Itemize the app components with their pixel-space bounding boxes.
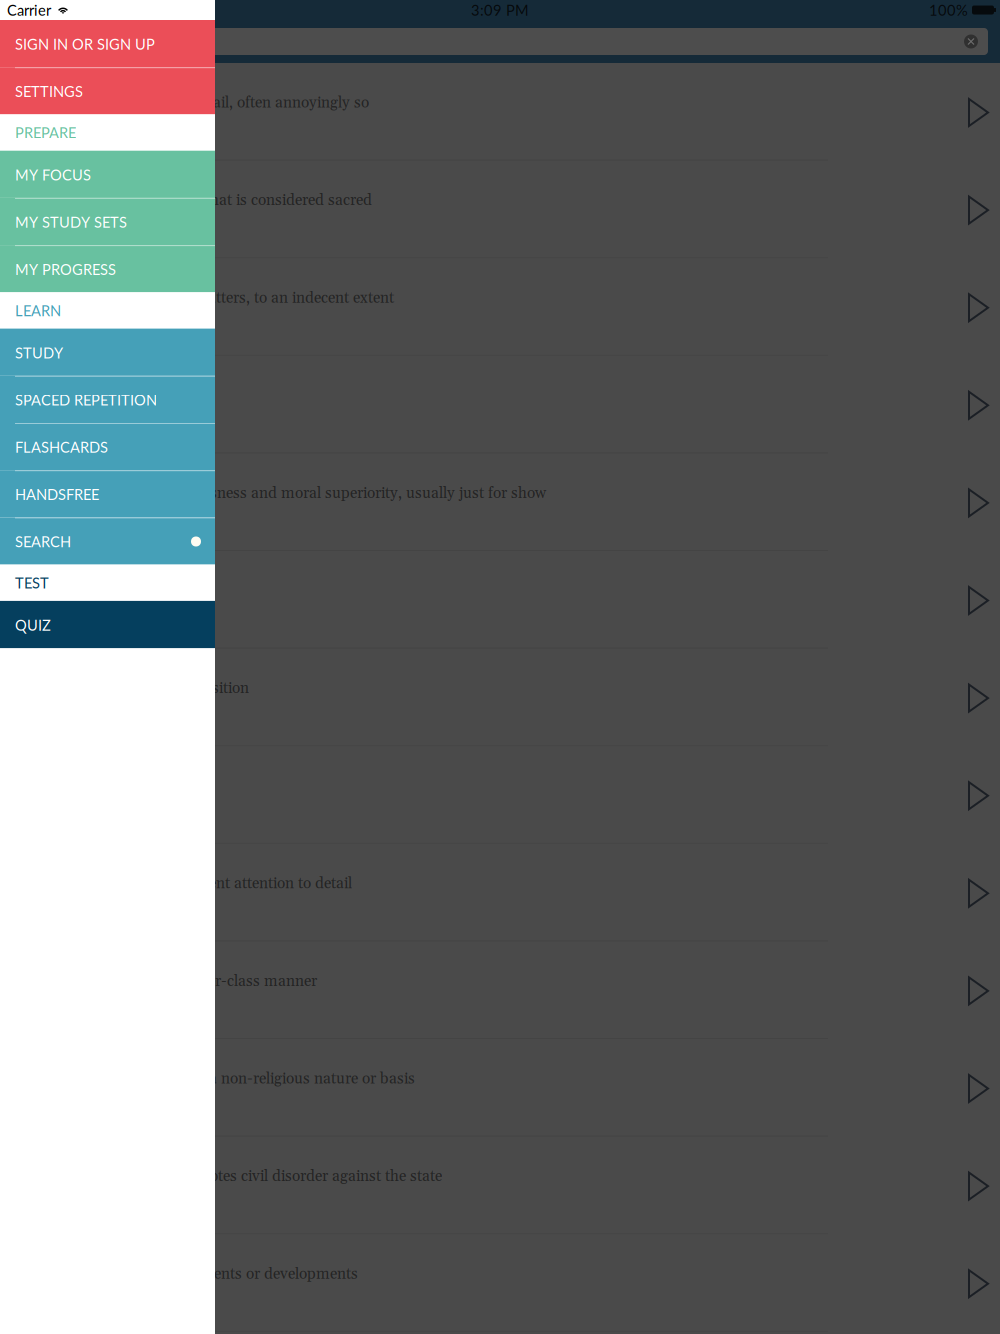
button[interactable]: sartorial [0,649,1000,746]
staticText: HANDSFREE [15,485,99,503]
button[interactable]: prurient [0,258,1000,356]
button[interactable]: HANDSFREE [0,470,215,517]
staticText: showing dedication and diligent attentio… [16,874,352,894]
button[interactable]: sardonic [0,551,1000,649]
button[interactable]: MY STUDY SETS [0,198,215,245]
button[interactable]: SPACED REPETITION [0,376,215,423]
button[interactable]: profane [0,161,1000,258]
staticText: Carrier [7,1,51,19]
button[interactable]: SEARCH [0,517,215,565]
button[interactable]: SIGN IN OR SIGN UP [0,20,215,67]
staticText: FLASHCARDS [15,438,108,456]
staticText: not respectful of or towards that is con… [16,191,372,210]
staticText: MY STUDY SETS [15,213,127,231]
staticText: prurient [16,266,71,286]
button[interactable]: FLASHCARDS [0,423,215,470]
staticText: denoting attitudes that have a non-relig… [16,1069,415,1089]
button[interactable]: secular [0,1039,1000,1137]
button[interactable]: MY FOCUS [0,151,215,198]
button[interactable]: sedate [0,941,1000,1039]
button[interactable]: SETTINGS [0,67,215,114]
staticText: SPACED REPETITION [15,391,157,409]
staticText: sardonic [16,559,74,579]
button[interactable]: seditious [0,1137,1000,1234]
button[interactable]: seminal [0,1234,1000,1332]
button[interactable]: STUDY [0,329,215,376]
staticText: relating to tailoring or composition [16,679,249,698]
staticText: calm and unhurried; an upper-class manne… [16,972,317,991]
staticText: MY PROGRESS [15,260,116,278]
staticText: pretending to moral righteousness and mo… [16,484,546,503]
staticText: strongly influencing future events or de… [16,1264,358,1284]
staticText: TEST [15,574,49,591]
button[interactable]: sedulous [0,844,1000,941]
staticText: sanctimonious [16,462,115,481]
button[interactable]: reticent [0,356,1000,453]
button[interactable]: sanctimonious [0,453,1000,551]
staticText: too concerned with minor detail, often a… [16,93,369,113]
button[interactable]: scrupulous [0,746,1000,844]
button[interactable]: MY PROGRESS [0,245,215,292]
staticText: QUIZ [15,616,51,634]
staticText: speech or conduct that promotes civil di… [16,1167,442,1186]
staticText: 100% [929,1,968,19]
staticText: showing interest in sexual matters, to a… [16,288,394,308]
button[interactable]: QUIZ [0,601,215,648]
staticText: SIGN IN OR SIGN UP [15,35,155,53]
staticText: PREPARE [15,124,76,141]
staticText: profane [16,169,68,188]
staticText: MY FOCUS [15,166,91,184]
staticText: not revealing one's thoughts [16,386,205,406]
button[interactable]: pedantic [0,63,1000,161]
staticText: SETTINGS [15,82,83,100]
staticText: grimly mocking or cynical [16,581,191,601]
staticText: SEARCH [15,533,71,550]
staticText: reticent [16,364,66,384]
staticText: 3:09 PM [471,1,529,19]
staticText: LEARN [15,302,61,319]
staticText: pedantic [16,71,74,91]
staticText: STUDY [15,344,63,361]
